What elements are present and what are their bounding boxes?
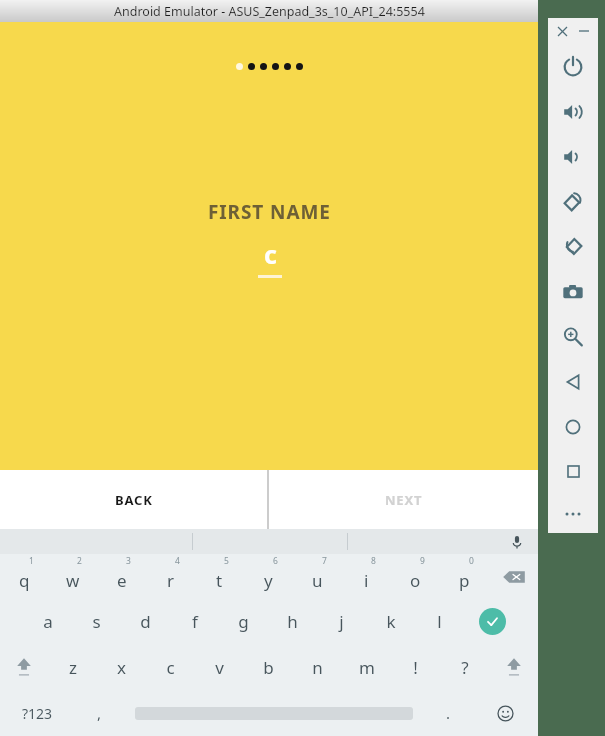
button[interactable]: Shift bbox=[0, 644, 48, 690]
button[interactable]: c bbox=[146, 644, 195, 690]
button[interactable]: 5 bbox=[195, 554, 244, 599]
button[interactable]: Shift bbox=[489, 644, 538, 690]
staticText: FIRST NAME bbox=[208, 199, 331, 225]
staticText: r bbox=[167, 569, 175, 592]
staticText: n bbox=[312, 656, 323, 679]
button[interactable]: . bbox=[423, 690, 473, 736]
staticText: 9 bbox=[420, 555, 425, 567]
staticText: 5 bbox=[224, 555, 229, 567]
button[interactable]: 2 bbox=[48, 554, 97, 599]
button[interactable]: n bbox=[293, 644, 342, 690]
staticText: c bbox=[264, 237, 277, 271]
staticText: ! bbox=[413, 656, 418, 679]
button[interactable]: 8 bbox=[342, 554, 391, 599]
button[interactable]: Voice input bbox=[508, 533, 526, 551]
button[interactable]: Volume up bbox=[548, 89, 598, 134]
button[interactable]: z bbox=[48, 644, 97, 690]
staticText: u bbox=[312, 569, 323, 592]
staticText: 6 bbox=[273, 555, 278, 567]
staticText: BACK bbox=[115, 491, 153, 509]
staticText: e bbox=[117, 569, 127, 592]
staticText: 4 bbox=[175, 555, 180, 567]
button[interactable]: 9 bbox=[391, 554, 440, 599]
button[interactable]: k bbox=[366, 599, 415, 644]
button[interactable]: BACK bbox=[0, 470, 267, 529]
button[interactable]: ?123 bbox=[0, 690, 74, 736]
staticText: 1 bbox=[29, 555, 34, 567]
button[interactable]: 4 bbox=[146, 554, 195, 599]
button[interactable]: Volume down bbox=[548, 134, 598, 179]
staticText: . bbox=[446, 703, 451, 723]
staticText: j bbox=[339, 610, 344, 633]
button[interactable]: d bbox=[121, 599, 170, 644]
staticText: Android Emulator - ASUS_Zenpad_3s_10_API… bbox=[114, 3, 425, 20]
button[interactable]: g bbox=[219, 599, 268, 644]
button[interactable]: 0 bbox=[440, 554, 489, 599]
button[interactable]: Enter bbox=[468, 599, 517, 644]
button[interactable]: Space bbox=[124, 690, 423, 736]
button[interactable]: c bbox=[258, 237, 282, 278]
staticText: NEXT bbox=[385, 491, 423, 509]
button[interactable]: Home bbox=[548, 404, 598, 449]
staticText: k bbox=[386, 610, 396, 633]
button[interactable]: , bbox=[74, 690, 124, 736]
staticText: , bbox=[97, 703, 102, 723]
staticText: x bbox=[117, 656, 126, 679]
button[interactable]: b bbox=[244, 644, 293, 690]
staticText: z bbox=[69, 656, 77, 679]
button[interactable]: ! bbox=[391, 644, 440, 690]
button[interactable]: ? bbox=[440, 644, 489, 690]
button[interactable]: 6 bbox=[244, 554, 293, 599]
button[interactable]: Zoom bbox=[548, 314, 598, 359]
button[interactable]: Close bbox=[554, 23, 570, 39]
button[interactable]: f bbox=[170, 599, 219, 644]
button[interactable]: Rotate left bbox=[548, 179, 598, 224]
staticText: 0 bbox=[469, 555, 474, 567]
button[interactable]: Overview bbox=[548, 449, 598, 494]
staticText: b bbox=[263, 656, 274, 679]
button[interactable]: More bbox=[548, 494, 598, 533]
button[interactable]: 1 bbox=[0, 554, 48, 599]
button[interactable]: a bbox=[23, 599, 72, 644]
staticText: s bbox=[92, 610, 101, 633]
staticText: 8 bbox=[371, 555, 376, 567]
staticText: a bbox=[43, 610, 53, 633]
button[interactable]: Power bbox=[548, 44, 598, 89]
staticText: m bbox=[359, 656, 375, 679]
staticText: o bbox=[410, 569, 421, 592]
button[interactable]: j bbox=[317, 599, 366, 644]
staticText: g bbox=[238, 610, 249, 633]
button[interactable]: 3 bbox=[97, 554, 146, 599]
staticText: h bbox=[287, 610, 298, 633]
staticText: p bbox=[459, 569, 470, 592]
staticText: w bbox=[66, 569, 80, 592]
button[interactable]: Screenshot bbox=[548, 269, 598, 314]
staticText: y bbox=[264, 569, 273, 592]
button[interactable]: v bbox=[195, 644, 244, 690]
button[interactable]: l bbox=[415, 599, 464, 644]
staticText: d bbox=[140, 610, 151, 633]
button[interactable]: x bbox=[97, 644, 146, 690]
staticText: 3 bbox=[126, 555, 131, 567]
button[interactable]: Backspace bbox=[489, 554, 538, 599]
button[interactable]: Emoji bbox=[473, 690, 538, 736]
staticText: t bbox=[216, 569, 223, 592]
staticText: ? bbox=[461, 656, 469, 679]
staticText: 2 bbox=[77, 555, 82, 567]
button[interactable]: m bbox=[342, 644, 391, 690]
staticText: ?123 bbox=[22, 704, 53, 723]
button[interactable]: NEXT bbox=[269, 470, 538, 529]
button[interactable]: s bbox=[72, 599, 121, 644]
button[interactable]: Rotate right bbox=[548, 224, 598, 269]
button[interactable]: h bbox=[268, 599, 317, 644]
staticText: q bbox=[19, 569, 30, 592]
staticText: v bbox=[215, 656, 224, 679]
staticText: 7 bbox=[322, 555, 327, 567]
staticText: c bbox=[166, 656, 175, 679]
staticText: l bbox=[437, 610, 442, 633]
button[interactable]: 7 bbox=[293, 554, 342, 599]
staticText: f bbox=[192, 610, 198, 633]
staticText: i bbox=[364, 569, 369, 592]
button[interactable]: Back bbox=[548, 359, 598, 404]
button[interactable]: Minimize bbox=[576, 23, 592, 39]
